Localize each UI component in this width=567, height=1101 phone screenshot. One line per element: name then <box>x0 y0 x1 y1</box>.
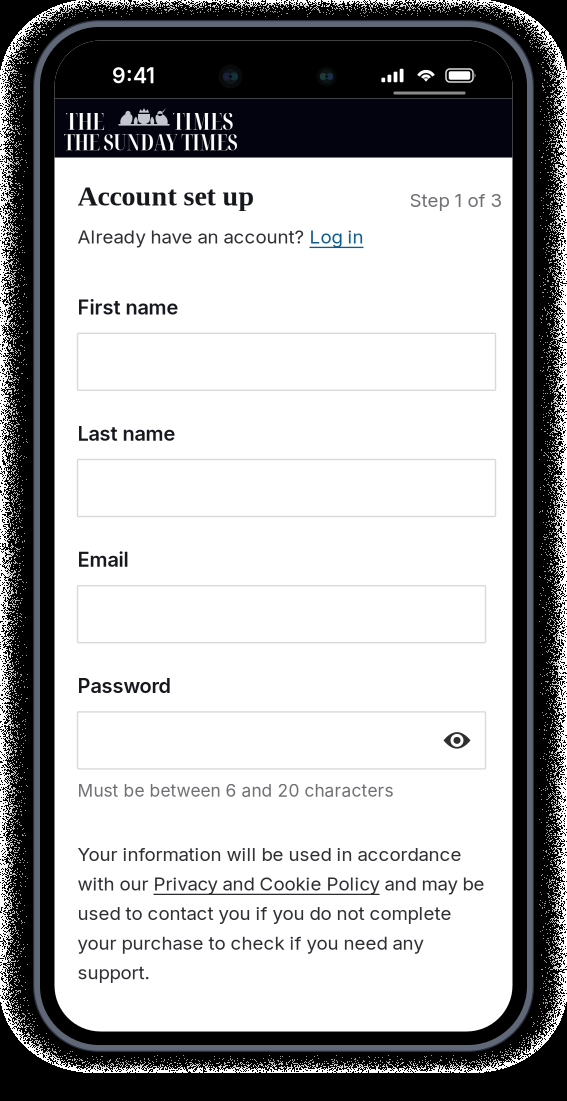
button[interactable] <box>77 333 495 390</box>
button[interactable] <box>77 586 485 643</box>
staticText: First name <box>77 295 178 319</box>
staticText: Already have an account? <box>77 225 309 248</box>
button[interactable]: Log in <box>309 225 363 248</box>
staticText: THE <box>65 105 104 136</box>
staticText: Email <box>77 547 128 572</box>
staticText: Step 1 of 3 <box>409 189 502 211</box>
staticText: Log in <box>309 225 363 248</box>
staticText: THE SUNDAY TIMES <box>63 127 237 157</box>
staticText: Account set up <box>77 180 254 211</box>
staticText: Last name <box>77 421 175 445</box>
staticText: TIMES <box>172 105 233 136</box>
staticText: Your information will be used in accorda… <box>77 843 484 984</box>
staticText: Must be between 6 and 20 characters <box>77 780 393 801</box>
staticText: Password <box>77 674 170 698</box>
button[interactable] <box>77 712 485 769</box>
staticText: 9:41 <box>112 63 155 88</box>
